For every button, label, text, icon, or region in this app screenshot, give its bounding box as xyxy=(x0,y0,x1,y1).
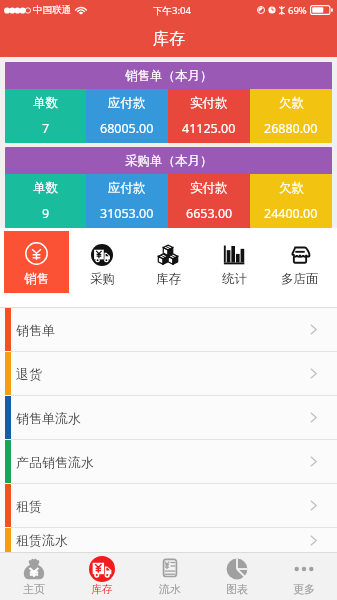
button[interactable]: 租赁流水 xyxy=(0,528,337,552)
staticText: 实付款 xyxy=(190,95,228,111)
button[interactable]: 主页 xyxy=(0,553,68,600)
staticText: 采购 xyxy=(90,271,115,287)
staticText: 31053.00 xyxy=(100,205,154,222)
staticText: 69% xyxy=(288,4,307,17)
staticText: 图表 xyxy=(226,582,248,596)
button[interactable]: 采购单（本月） xyxy=(5,147,332,228)
staticText: 采购单（本月） xyxy=(125,153,213,169)
button[interactable]: 退货 xyxy=(0,352,337,395)
staticText: 应付款 xyxy=(108,180,146,196)
staticText: 26880.00 xyxy=(264,120,318,137)
staticText: 单数 xyxy=(33,180,58,196)
staticText: 退货 xyxy=(16,366,42,382)
staticText: 应付款 xyxy=(108,95,146,111)
button[interactable]: 图表 xyxy=(203,553,270,600)
staticText: 销售单 xyxy=(16,322,55,338)
staticText: 24400.00 xyxy=(264,205,318,222)
button[interactable]: 销售单（本月） xyxy=(5,62,332,143)
staticText: 租赁 xyxy=(16,498,42,514)
button[interactable]: 更多 xyxy=(270,553,337,600)
button[interactable]: 产品销售流水 xyxy=(0,440,337,483)
staticText: 41125.00 xyxy=(182,120,236,137)
staticText: 租赁流水 xyxy=(16,532,68,548)
staticText: 中国联通 xyxy=(33,4,71,16)
button[interactable]: 销售单流水 xyxy=(0,396,337,439)
staticText: 库存 xyxy=(91,582,113,596)
staticText: 销售单（本月） xyxy=(125,68,213,84)
button[interactable]: 销售 xyxy=(4,231,69,293)
staticText: 主页 xyxy=(23,582,45,596)
button[interactable]: 采购 xyxy=(69,228,135,307)
staticText: 流水 xyxy=(159,582,181,596)
staticText: 7 xyxy=(42,120,50,137)
staticText: 产品销售流水 xyxy=(16,454,94,470)
staticText: 库存 xyxy=(156,271,181,287)
staticText: 9 xyxy=(42,205,50,222)
button[interactable]: 多店面 xyxy=(267,228,333,307)
button[interactable]: 库存 xyxy=(68,553,136,600)
staticText: 更多 xyxy=(293,582,315,596)
button[interactable]: 流水 xyxy=(136,553,203,600)
staticText: 欠款 xyxy=(279,95,304,111)
staticText: 统计 xyxy=(222,271,247,287)
staticText: 销售 xyxy=(24,271,49,287)
staticText: 实付款 xyxy=(190,180,228,196)
staticText: 单数 xyxy=(33,95,58,111)
button[interactable]: 统计 xyxy=(201,228,267,307)
button[interactable]: 租赁 xyxy=(0,484,337,527)
staticText: 销售单流水 xyxy=(16,410,81,426)
staticText: 多店面 xyxy=(281,271,319,287)
staticText: 6653.00 xyxy=(186,205,233,222)
staticText: 下午3:04 xyxy=(153,4,191,17)
staticText: 欠款 xyxy=(279,180,304,196)
button[interactable]: 库存 xyxy=(135,228,201,307)
staticText: 68005.00 xyxy=(100,120,154,137)
button[interactable]: 销售单 xyxy=(0,308,337,351)
staticText: 库存 xyxy=(153,29,185,49)
